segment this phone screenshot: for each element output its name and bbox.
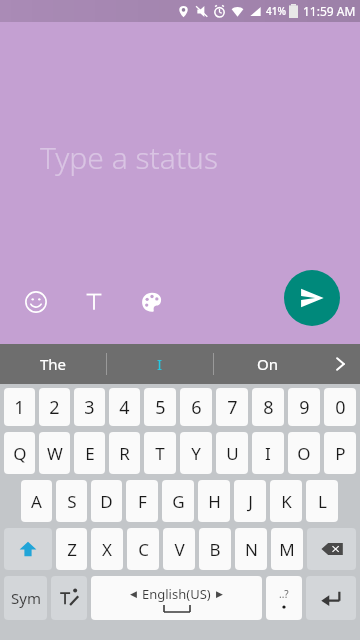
button[interactable]: 5 — [144, 388, 176, 426]
button[interactable]: Enter — [306, 576, 356, 620]
button[interactable]: F — [126, 480, 158, 522]
staticText: English(US) — [142, 585, 211, 603]
staticText: V — [174, 538, 185, 561]
button[interactable]: 7 — [216, 388, 248, 426]
staticText: The — [40, 354, 67, 374]
button[interactable]: Shift — [4, 528, 52, 570]
staticText: I — [265, 442, 271, 465]
staticText: E — [85, 442, 95, 465]
button[interactable]: O — [288, 432, 320, 474]
button[interactable]: P — [324, 432, 356, 474]
button[interactable]: Sym — [4, 576, 47, 620]
staticText: 8 — [263, 395, 274, 420]
button[interactable]: H — [198, 480, 230, 522]
staticText: H — [208, 490, 221, 513]
button[interactable]: 2 — [39, 388, 70, 426]
staticText: Q — [13, 442, 27, 465]
button[interactable]: A — [21, 480, 52, 522]
staticText: 4 — [119, 395, 130, 420]
staticText: 41% — [266, 4, 286, 18]
staticText: ◀ — [130, 589, 137, 599]
staticText: D — [100, 490, 113, 513]
staticText: T — [155, 442, 165, 465]
staticText: 11:59 AM — [303, 3, 356, 19]
staticText: 1 — [14, 395, 25, 420]
staticText: F — [138, 490, 147, 513]
button[interactable]: Emoji — [14, 280, 58, 324]
button[interactable]: I — [252, 432, 284, 474]
staticText: K — [281, 490, 292, 513]
button[interactable]: 0 — [324, 388, 356, 426]
button[interactable]: G — [162, 480, 194, 522]
staticText: W — [47, 442, 63, 465]
button[interactable]: E — [74, 432, 105, 474]
button[interactable]: D — [91, 480, 122, 522]
button[interactable]: C — [127, 528, 159, 570]
staticText: 0 — [335, 395, 346, 420]
staticText: L — [318, 490, 327, 513]
staticText: Z — [67, 538, 77, 561]
button[interactable]: More suggestions — [320, 344, 360, 384]
staticText: N — [245, 538, 258, 561]
staticText: On — [257, 354, 278, 374]
staticText: 7 — [227, 395, 238, 420]
staticText: J — [248, 490, 253, 513]
button[interactable]: I — [107, 344, 213, 384]
button[interactable]: J — [234, 480, 266, 522]
staticText: ▶ — [216, 589, 223, 599]
staticText: G — [172, 490, 185, 513]
button[interactable]: On — [214, 344, 320, 384]
button[interactable]: X — [91, 528, 123, 570]
button[interactable]: 3 — [74, 388, 105, 426]
staticText: B — [209, 538, 221, 561]
button[interactable]: Q — [4, 432, 35, 474]
staticText: 9 — [299, 395, 310, 420]
button[interactable]: B — [199, 528, 231, 570]
staticText: C — [138, 538, 149, 561]
button[interactable]: Z — [56, 528, 87, 570]
button[interactable]: W — [39, 432, 70, 474]
button[interactable]: Voice input / handwriting — [51, 576, 87, 620]
button[interactable]: M — [271, 528, 303, 570]
staticText: 3 — [84, 395, 95, 420]
staticText: P — [335, 442, 346, 465]
button[interactable]: Text style — [72, 280, 116, 324]
button[interactable]: Send — [284, 270, 340, 326]
button[interactable]: The — [0, 344, 106, 384]
button[interactable]: N — [235, 528, 267, 570]
staticText: 5 — [155, 395, 166, 420]
button[interactable]: Y — [180, 432, 212, 474]
staticText: A — [31, 490, 42, 513]
button[interactable]: Backspace — [307, 528, 356, 570]
staticText: R — [119, 442, 130, 465]
button[interactable]: 9 — [288, 388, 320, 426]
staticText: Y — [191, 442, 201, 465]
button[interactable]: 4 — [109, 388, 140, 426]
button[interactable]: Period — [266, 576, 302, 620]
button[interactable]: 1 — [4, 388, 35, 426]
staticText: ..? — [279, 587, 289, 601]
button[interactable]: V — [163, 528, 195, 570]
staticText: U — [226, 442, 239, 465]
button[interactable]: R — [109, 432, 140, 474]
staticText: X — [102, 538, 112, 561]
staticText: 2 — [49, 395, 60, 420]
button[interactable]: 8 — [252, 388, 284, 426]
staticText: I — [157, 354, 163, 374]
staticText: Type a status — [40, 137, 218, 178]
button[interactable]: S — [56, 480, 87, 522]
button[interactable]: K — [270, 480, 302, 522]
staticText: M — [279, 538, 295, 561]
button[interactable]: Background colour — [130, 280, 174, 324]
button[interactable]: 6 — [180, 388, 212, 426]
button[interactable]: T — [144, 432, 176, 474]
staticText: O — [297, 442, 311, 465]
staticText: Sym — [11, 588, 41, 608]
staticText: 6 — [191, 395, 202, 420]
button[interactable]: Space — [91, 576, 262, 620]
button[interactable]: U — [216, 432, 248, 474]
staticText: S — [67, 490, 77, 513]
button[interactable]: L — [306, 480, 338, 522]
